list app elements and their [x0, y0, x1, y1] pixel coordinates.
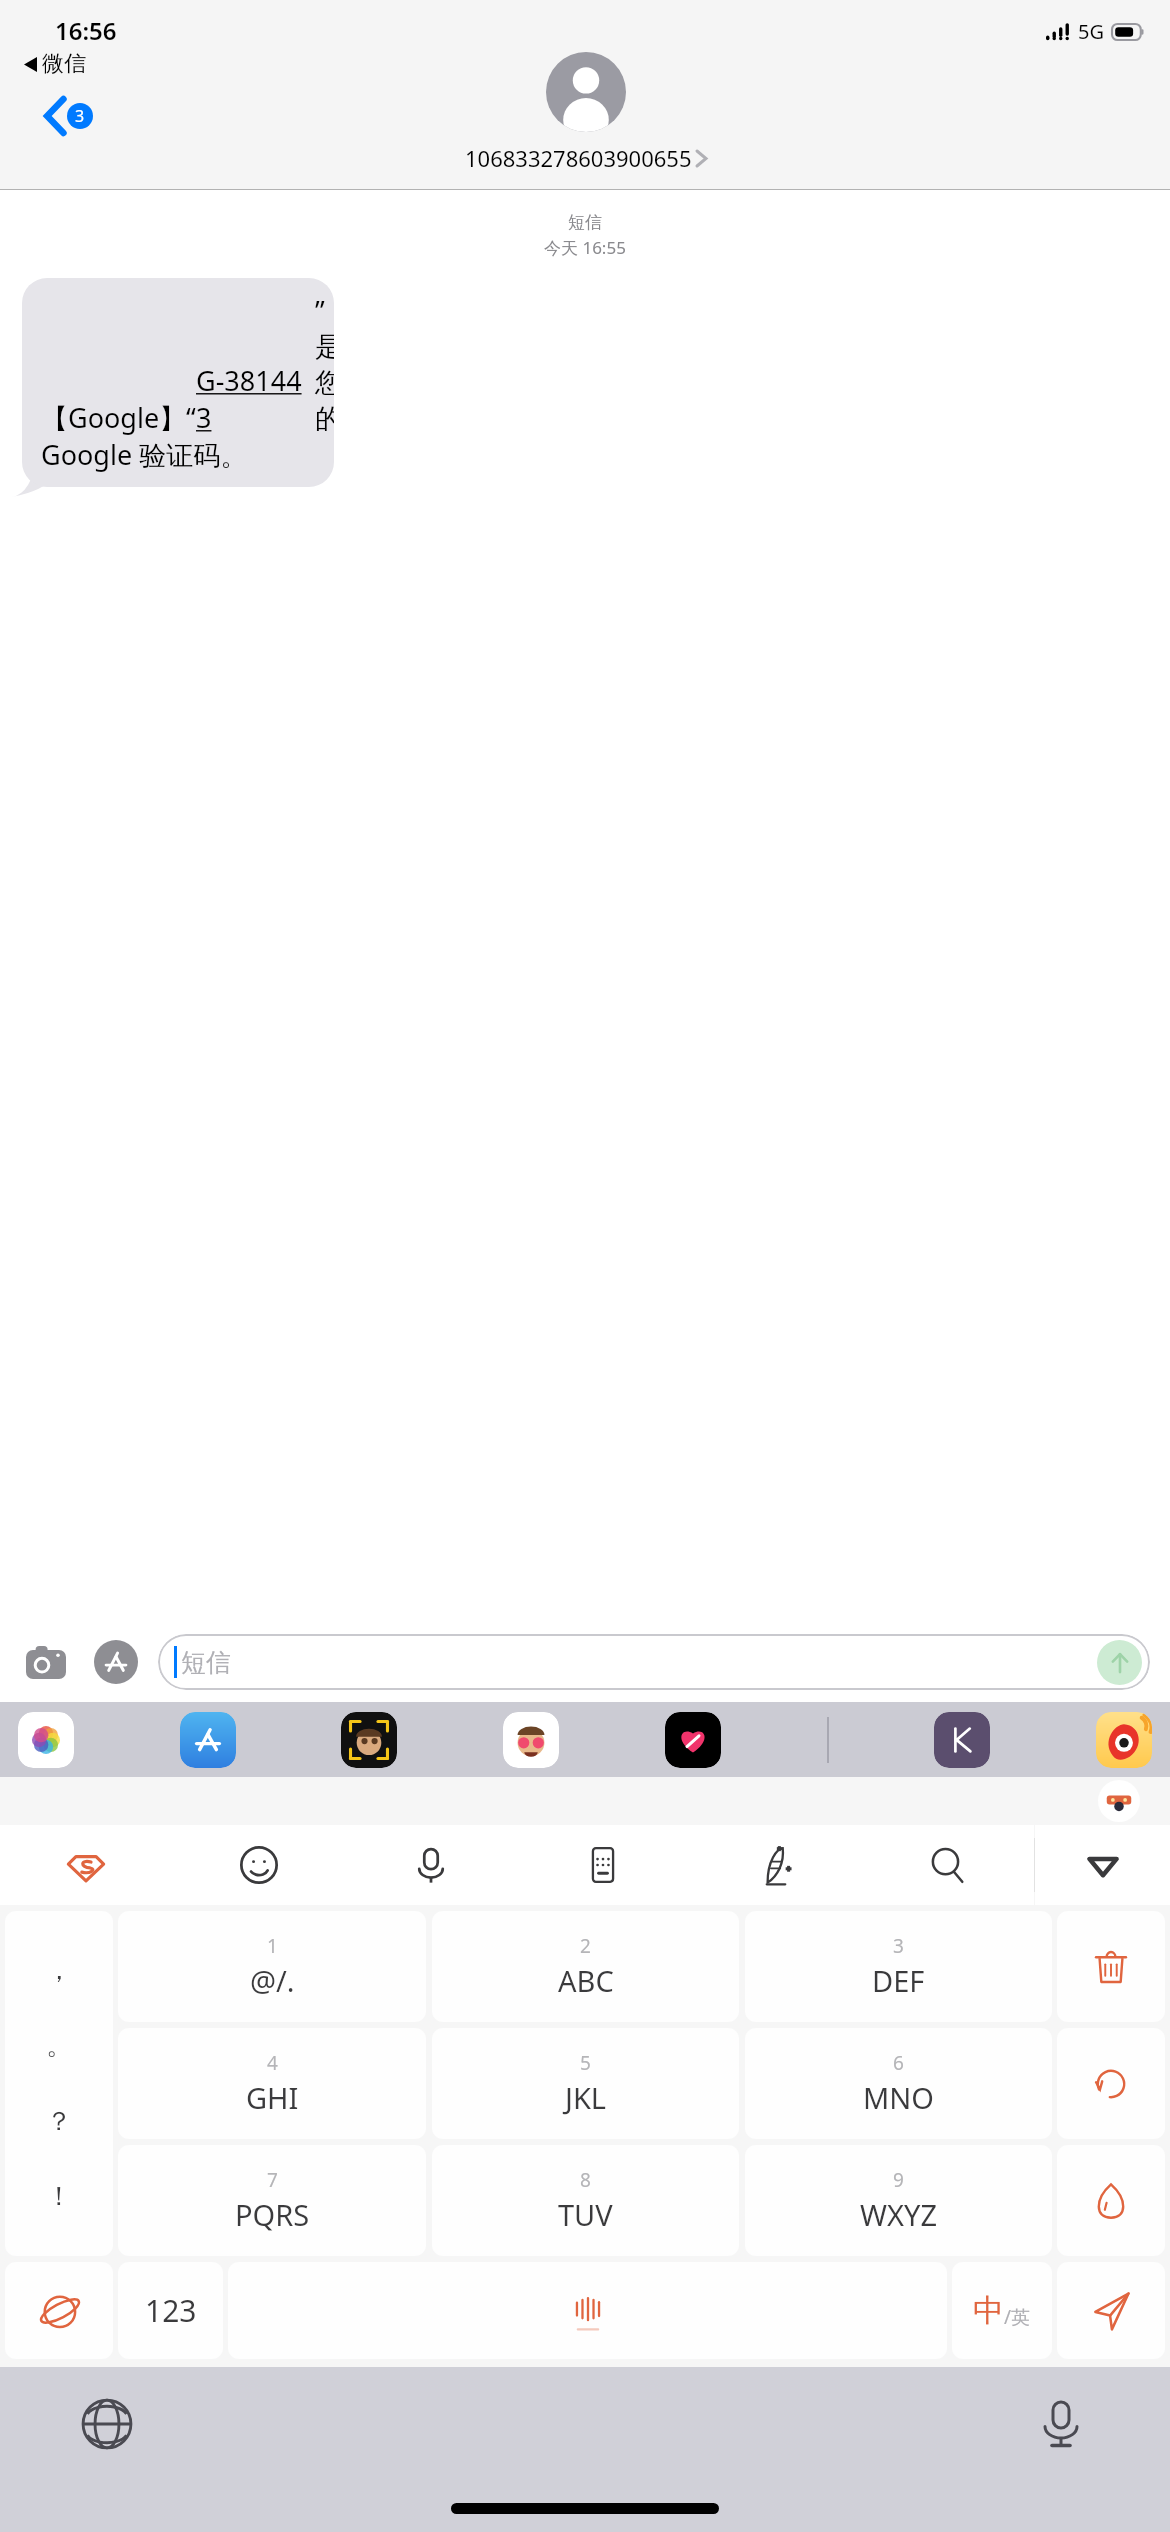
button[interactable]: 6 — [745, 2028, 1052, 2139]
button[interactable]: Delete — [1057, 1911, 1165, 2022]
button[interactable]: Clear — [1057, 2145, 1165, 2256]
button[interactable]: 【Google】“ — [22, 278, 334, 487]
staticText: G-381443 — [196, 362, 315, 436]
button[interactable]: Emoticons — [5, 2262, 113, 2359]
button[interactable]: Sticker avatar — [1098, 1780, 1140, 1822]
button[interactable]: Back — [42, 95, 97, 137]
button[interactable]: Stickers — [503, 1712, 559, 1768]
button[interactable]: Keyboard settings — [567, 1829, 639, 1901]
button[interactable]: ， — [5, 1911, 113, 2256]
staticText: 123 — [145, 2290, 197, 2331]
staticText: /英 — [1004, 2304, 1031, 2330]
staticText: 中 — [973, 2291, 1004, 2330]
staticText: 16:56 — [55, 14, 117, 47]
staticText: 2 — [580, 1933, 591, 1959]
staticText: WXYZ — [860, 2195, 937, 2234]
staticText: ？ — [46, 2105, 72, 2138]
button[interactable]: 3 — [745, 1911, 1052, 2022]
staticText: 5 — [580, 2050, 591, 2076]
button[interactable]: 2 — [432, 1911, 739, 2022]
button[interactable]: 123 — [118, 2262, 223, 2359]
button[interactable]: Photos — [18, 1712, 74, 1768]
staticText: 3 — [75, 105, 85, 127]
button[interactable]: 7 — [118, 2145, 426, 2256]
staticText: ABC — [558, 1961, 614, 2000]
button[interactable]: 4 — [118, 2028, 426, 2139]
button[interactable]: 5 — [432, 2028, 739, 2139]
staticText: 7 — [267, 2167, 278, 2193]
button[interactable]: Dictation — [1032, 2395, 1090, 2453]
button[interactable]: 中 — [952, 2262, 1052, 2359]
staticText: PQRS — [235, 2195, 310, 2234]
staticText: 【Google】“ — [41, 399, 196, 436]
button[interactable]: 8 — [432, 2145, 739, 2256]
staticText: DEF — [872, 1961, 925, 2000]
staticText: JKL — [565, 2078, 607, 2117]
staticText: Google 验证码。 — [41, 436, 248, 473]
button[interactable]: Memoji — [341, 1712, 397, 1768]
button[interactable]: Sogou — [50, 1829, 122, 1901]
staticText: TUV — [558, 2195, 613, 2234]
staticText: 3 — [893, 1933, 904, 1959]
staticText: 4 — [267, 2050, 278, 2076]
button[interactable]: 9 — [745, 2145, 1052, 2256]
button[interactable]: Search — [912, 1829, 984, 1901]
button[interactable]: 106833278603900655 — [459, 141, 712, 175]
button[interactable]: Send — [1097, 1640, 1142, 1685]
button[interactable]: Emoji — [223, 1829, 295, 1901]
staticText: 8 — [580, 2167, 591, 2193]
button[interactable]: K App — [934, 1712, 990, 1768]
button[interactable]: Voice input — [395, 1829, 467, 1901]
button[interactable]: Contact avatar — [546, 52, 626, 132]
button[interactable]: Send — [1057, 2262, 1165, 2359]
staticText: 今天 16:55 — [544, 236, 626, 259]
button[interactable]: Apps — [92, 1638, 140, 1686]
button[interactable]: Fitness — [665, 1712, 721, 1768]
staticText: 9 — [893, 2167, 904, 2193]
button[interactable]: Weibo — [1096, 1712, 1152, 1768]
button[interactable]: Space — [228, 2262, 947, 2359]
button[interactable]: 微信 — [20, 48, 90, 80]
staticText: 6 — [893, 2050, 904, 2076]
staticText: 短信 — [181, 1647, 231, 1678]
staticText: ， — [46, 1954, 72, 1987]
button[interactable]: 短信 — [158, 1634, 1150, 1690]
staticText: 短信 — [568, 212, 602, 233]
button[interactable]: App Store — [180, 1712, 236, 1768]
button[interactable]: Switch language — [78, 2395, 136, 2453]
staticText: ！ — [46, 2180, 72, 2213]
staticText: MNO — [863, 2078, 934, 2117]
staticText: GHI — [246, 2078, 299, 2117]
staticText: 106833278603900655 — [465, 143, 692, 173]
button[interactable]: Collapse keyboard — [1035, 1825, 1170, 1905]
staticText: @/. — [250, 1961, 295, 2000]
button[interactable]: Undo — [1057, 2028, 1165, 2139]
staticText: 1 — [267, 1933, 278, 1959]
staticText: 5G — [1078, 18, 1104, 45]
button[interactable]: 1 — [118, 1911, 426, 2022]
staticText: 微信 — [42, 50, 86, 78]
button[interactable]: Camera — [22, 1638, 70, 1686]
staticText: 。 — [46, 2029, 72, 2062]
button[interactable]: Handwriting — [740, 1829, 812, 1901]
